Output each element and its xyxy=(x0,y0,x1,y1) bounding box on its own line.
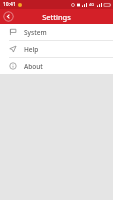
button[interactable]: Help xyxy=(0,41,113,57)
staticText: About xyxy=(24,62,43,71)
staticText: System xyxy=(24,28,47,37)
button[interactable]: System xyxy=(0,24,113,40)
button[interactable]: About xyxy=(0,58,113,74)
staticText: Settings xyxy=(42,12,71,22)
button[interactable]: Back xyxy=(3,11,14,22)
staticText: 4G xyxy=(89,2,95,7)
staticText: Help xyxy=(24,45,39,54)
staticText: 10:41 xyxy=(3,1,16,8)
